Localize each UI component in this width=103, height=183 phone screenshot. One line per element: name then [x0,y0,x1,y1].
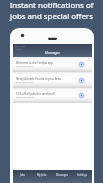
button[interactable]: New JobLeads Posted in your Area [13,72,92,88]
staticText: Messages [56,173,69,177]
staticText: Messages [45,51,60,55]
staticText: New JobLeads Posted in your Area [16,77,61,81]
button[interactable]: 10% off all jobs this weekend! [13,88,92,103]
staticText: LOREM [15,48,23,51]
staticText: 10% off all jobs this weekend! [16,92,55,96]
button[interactable]: Messages [52,170,72,183]
button[interactable]: Open message [78,77,85,84]
staticText: 09/04/2019 8:32 [16,65,33,68]
button[interactable]: Jobs [13,170,32,183]
staticText: 21/04/2019 4:10 [16,81,33,84]
staticText: Instant notifications of jobs and specia… [0,0,103,21]
staticText: My Jobs [37,173,47,177]
button[interactable]: Welcome to the FindJob app [13,57,92,72]
button[interactable]: Open message [78,61,85,68]
button[interactable]: Open message [78,92,85,99]
staticText: Settings [77,173,87,177]
button[interactable]: Settings [72,170,92,183]
staticText: JOB ALERT [15,45,26,48]
button[interactable]: My Jobs [32,170,52,183]
staticText: Welcome to the FindJob app [16,61,53,65]
staticText: Jobs [20,173,26,177]
staticText: 06/05/2019 09:21 [16,96,34,99]
